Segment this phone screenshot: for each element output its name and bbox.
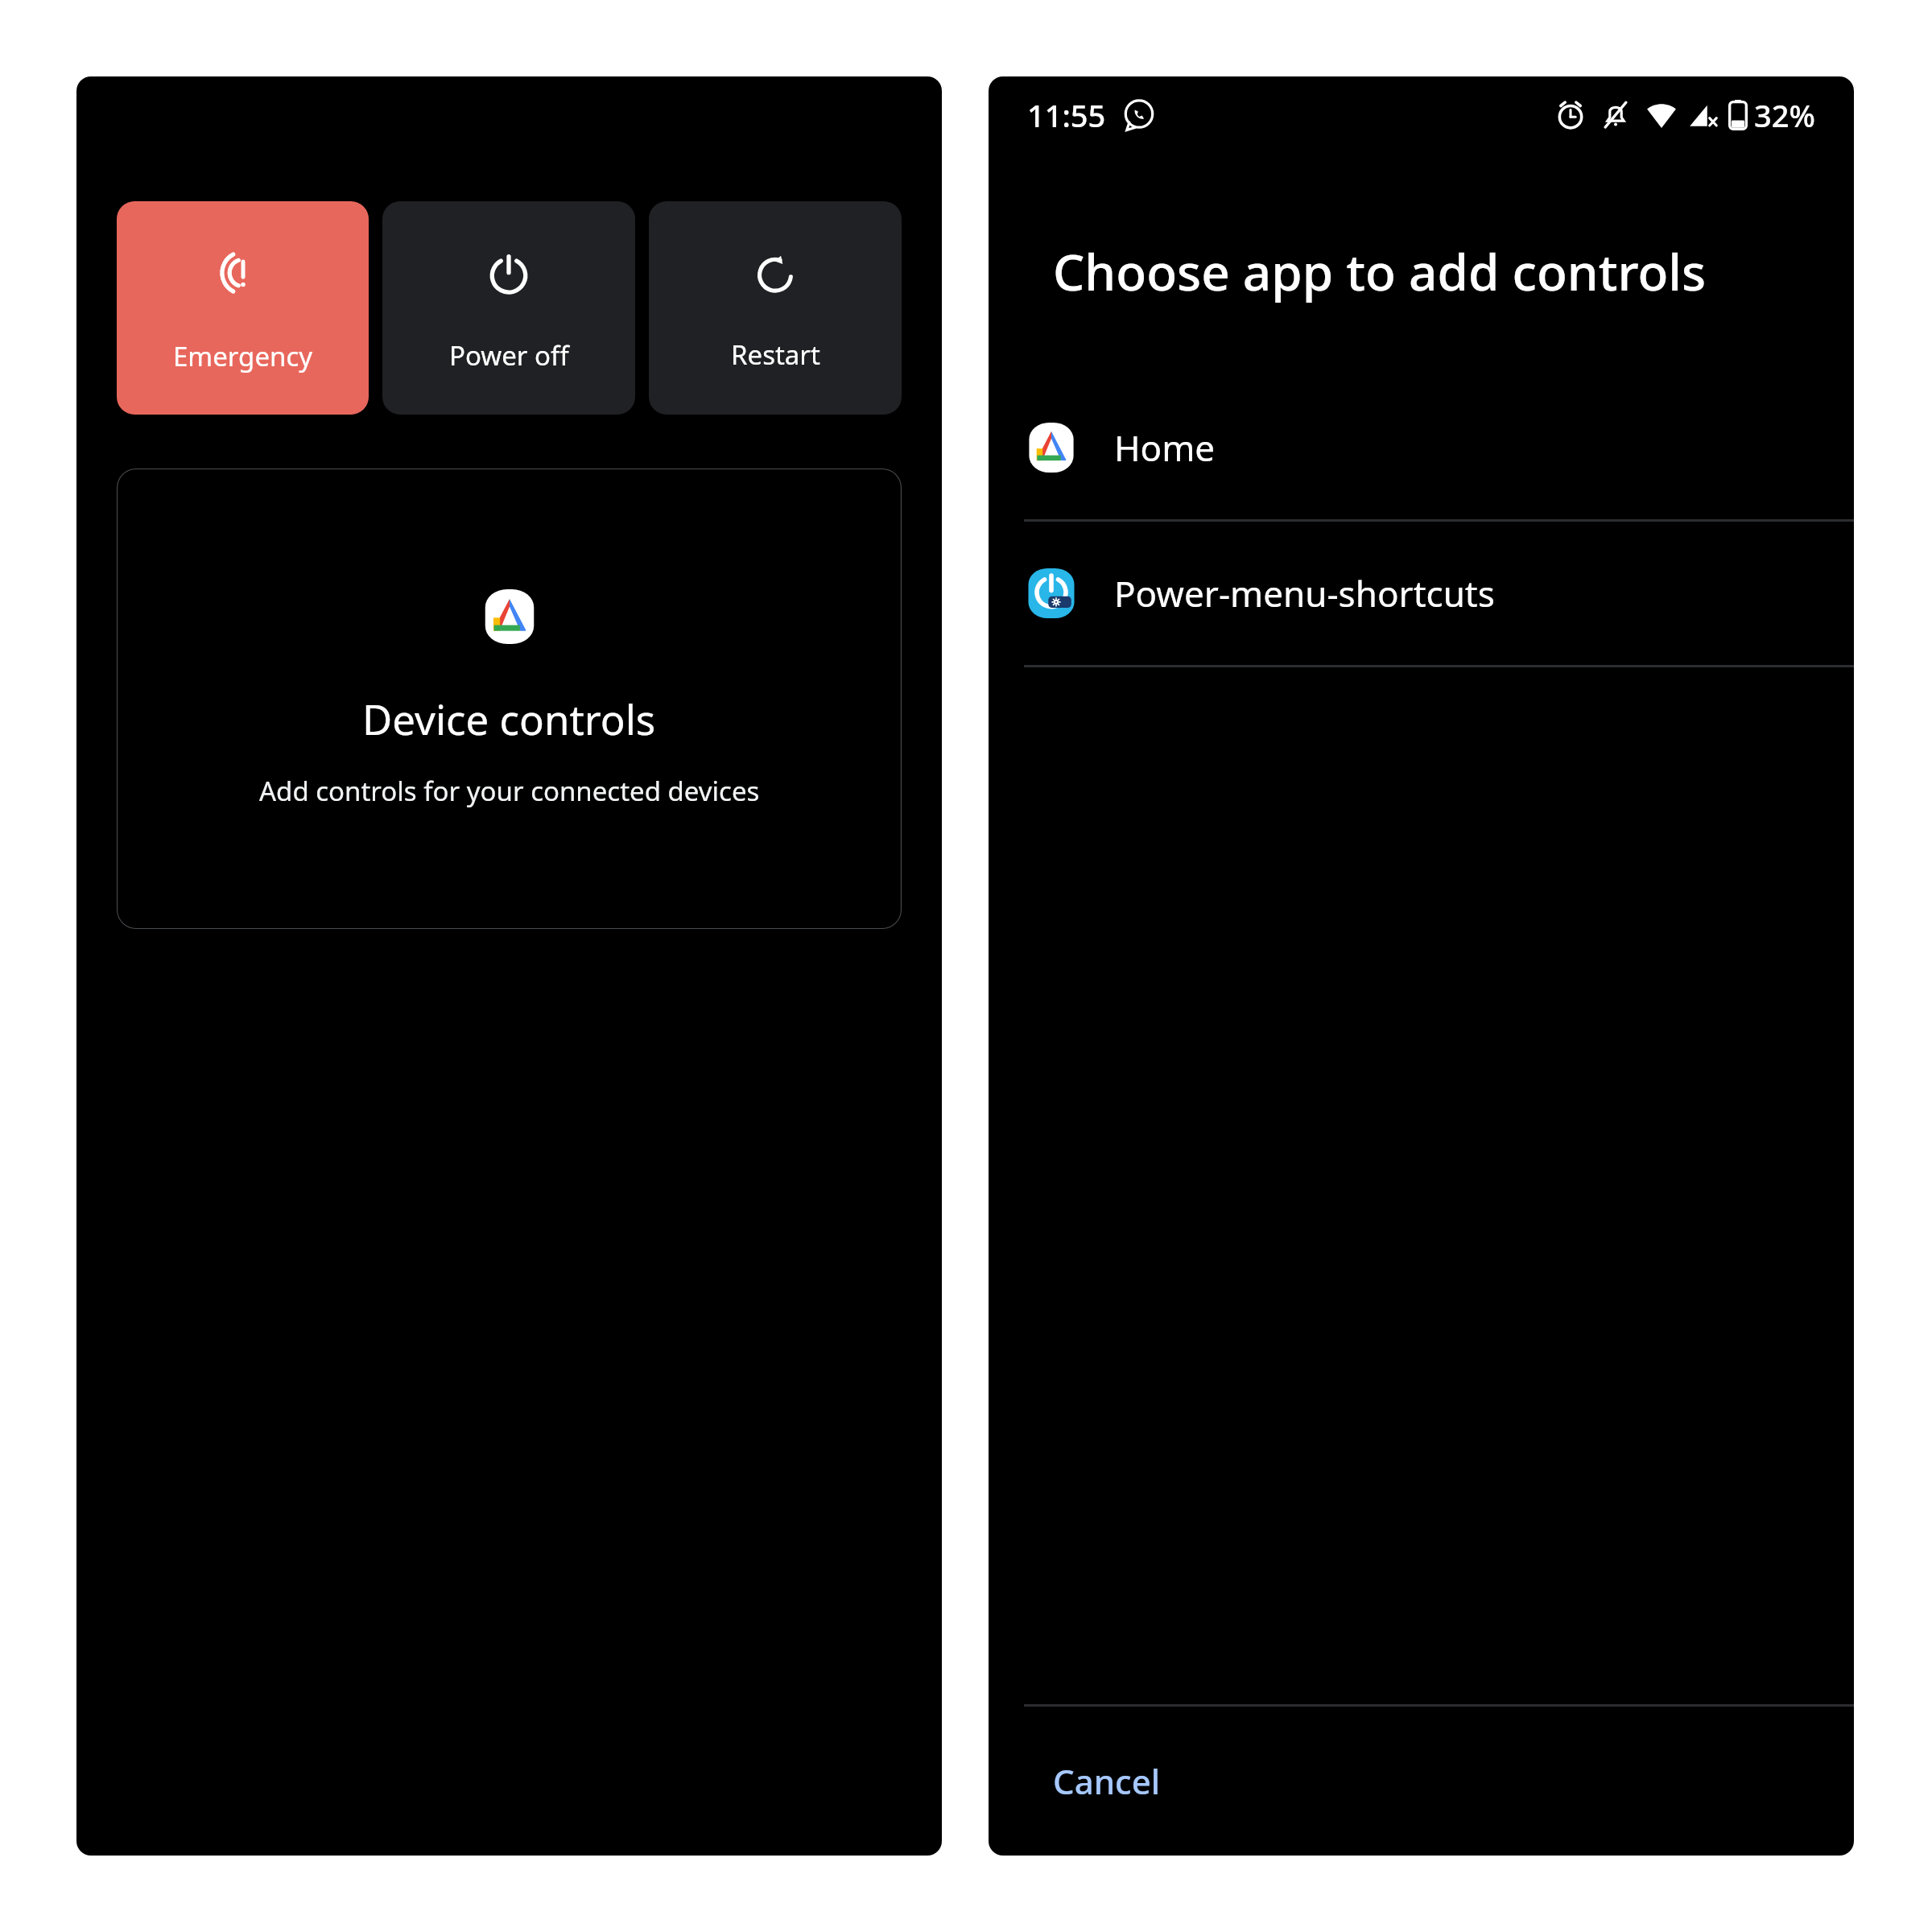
button[interactable]: Restart	[649, 201, 902, 415]
staticText: Power off	[449, 337, 569, 374]
other: Restart	[753, 251, 797, 295]
button[interactable]: Power off	[382, 201, 635, 415]
staticText: 32%	[1754, 94, 1815, 136]
other: Power off	[486, 250, 531, 295]
staticText: Home	[1114, 423, 1216, 472]
staticText: Cancel	[1053, 1758, 1161, 1804]
staticText: 11:55	[1027, 94, 1106, 136]
staticText: Emergency	[173, 338, 313, 374]
staticText: Choose app to add controls	[1053, 237, 1707, 305]
other: Emergency	[220, 250, 266, 296]
button[interactable]: Power-menu-shortcuts	[989, 522, 1854, 665]
staticText: Add controls for your connected devices	[259, 773, 760, 809]
staticText: Power-menu-shortcuts	[1114, 569, 1495, 617]
button[interactable]: Home	[989, 376, 1854, 519]
button[interactable]: Emergency	[117, 201, 369, 415]
staticText: Restart	[731, 336, 820, 373]
staticText: Device controls	[362, 691, 656, 746]
button[interactable]: Device controls	[117, 469, 902, 929]
button[interactable]: Cancel	[989, 1707, 1854, 1856]
